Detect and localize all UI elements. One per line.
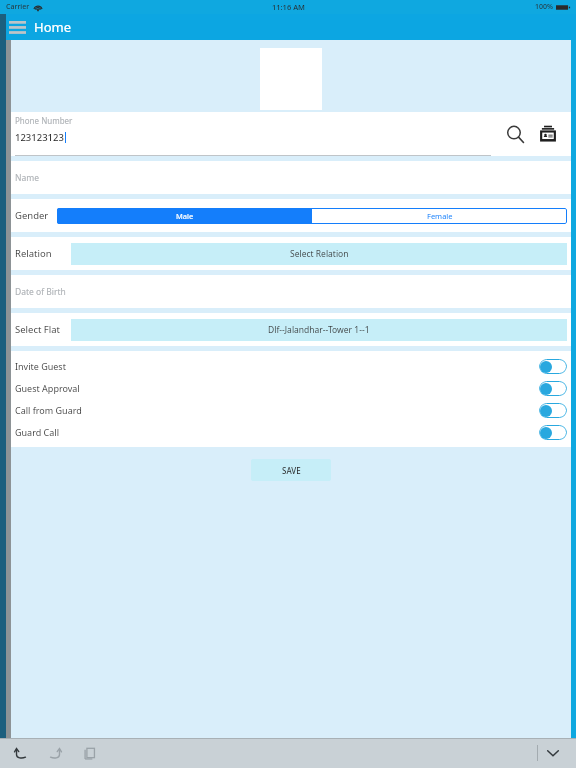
staticText: Guard Call bbox=[15, 426, 59, 438]
staticText: Invite Guest bbox=[15, 360, 66, 372]
button[interactable]: Date of Birth bbox=[11, 275, 571, 308]
staticText: Phone Number bbox=[15, 115, 73, 126]
button[interactable]: Name bbox=[11, 161, 571, 194]
button[interactable]: Female bbox=[312, 208, 567, 224]
staticText: Home bbox=[34, 18, 71, 36]
button[interactable]: SAVE bbox=[251, 459, 331, 481]
button[interactable]: Undo bbox=[8, 740, 34, 766]
staticText: 100% bbox=[535, 2, 553, 12]
staticText: 11:16 AM bbox=[272, 2, 305, 12]
staticText: Dlf--Jalandhar--Tower 1--1 bbox=[268, 324, 370, 336]
button[interactable]: Paste bbox=[76, 740, 102, 766]
staticText: Call from Guard bbox=[15, 404, 82, 416]
staticText: SAVE bbox=[282, 465, 301, 476]
staticText: Male bbox=[176, 211, 194, 221]
button[interactable]: Guard Call bbox=[15, 421, 567, 443]
staticText: Select Relation bbox=[290, 248, 349, 260]
staticText: Name bbox=[15, 172, 39, 184]
staticText: Select Flat bbox=[15, 323, 60, 336]
button[interactable]: Open navigation menu bbox=[0, 14, 34, 40]
staticText: Guest Approval bbox=[15, 382, 80, 394]
button[interactable]: Invite Guest bbox=[15, 355, 567, 377]
button[interactable]: Guest Approval bbox=[15, 377, 567, 399]
staticText: Gender bbox=[15, 209, 49, 222]
button[interactable]: Select Relation bbox=[71, 243, 567, 265]
button[interactable]: Call from Guard bbox=[15, 399, 567, 421]
button[interactable]: Redo bbox=[42, 740, 68, 766]
button[interactable]: Dlf--Jalandhar--Tower 1--1 bbox=[71, 319, 567, 341]
staticText: Relation bbox=[15, 247, 52, 260]
button[interactable]: Search bbox=[500, 119, 530, 149]
staticText: Carrier bbox=[6, 2, 30, 12]
staticText: Date of Birth bbox=[15, 286, 66, 298]
staticText: Female bbox=[427, 211, 453, 221]
button[interactable]: Hide keyboard bbox=[538, 738, 568, 768]
button[interactable]: Pick from contacts bbox=[533, 119, 563, 149]
button[interactable]: Male bbox=[57, 208, 312, 224]
staticText: 123123123 bbox=[15, 131, 64, 144]
